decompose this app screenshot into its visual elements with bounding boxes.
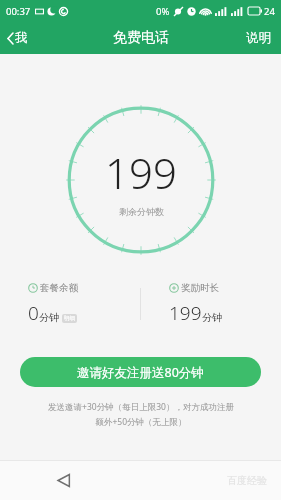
button[interactable]: 套餐余额: [0, 282, 140, 326]
staticText: 百度经验: [227, 474, 267, 487]
button[interactable]: 说明: [236, 24, 281, 52]
staticText: 免费电话: [113, 29, 169, 47]
staticText: 0: [28, 300, 39, 326]
button[interactable]: 我: [0, 25, 38, 51]
staticText: 奖励时长: [181, 282, 219, 294]
staticText: 00:37: [6, 5, 31, 18]
staticText: 分钟: [202, 311, 222, 324]
button[interactable]: 奖励时长: [141, 282, 281, 326]
staticText: 套餐余额: [40, 282, 78, 294]
staticText: 明细: [64, 315, 75, 322]
button[interactable]: 邀请好友注册送80分钟: [20, 357, 261, 387]
staticText: 邀请好友注册送80分钟: [77, 364, 204, 381]
staticText: 分钟: [39, 311, 59, 324]
staticText: 199: [169, 300, 202, 326]
staticText: 发送邀请+30分钟（每日上限30），对方成功注册 额外+50分钟（无上限）: [48, 401, 234, 428]
button[interactable]: Back: [48, 465, 78, 495]
staticText: 0%: [156, 5, 170, 18]
staticText: 剩余分钟数: [119, 206, 164, 217]
staticText: 24: [264, 5, 275, 18]
staticText: 199: [105, 144, 177, 201]
staticText: 我: [15, 30, 28, 46]
